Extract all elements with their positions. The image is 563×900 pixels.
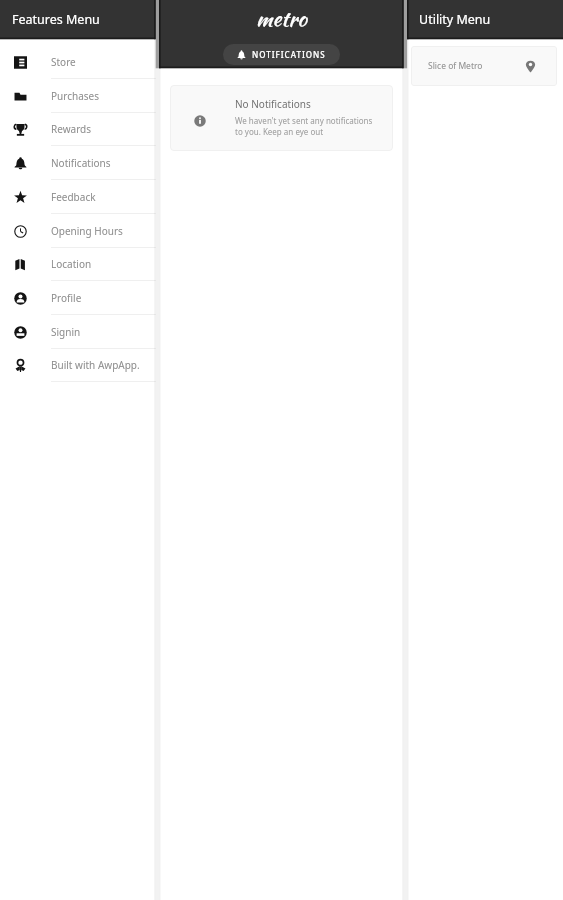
staticText: Features Menu [12,11,100,28]
button[interactable]: Opening Hours [0,214,157,248]
staticText: Built with AwpApp. [51,358,140,372]
staticText: No Notifications [235,97,311,111]
staticText: We haven't yet sent any notifications to… [235,115,373,138]
staticText: Purchases [51,89,99,103]
button[interactable]: Store [0,45,157,79]
staticText: Notifications [51,156,111,170]
staticText: Location [51,257,92,271]
staticText: Slice of Metro [428,60,483,72]
button[interactable]: Signin [0,315,157,349]
staticText: Rewards [51,122,91,136]
staticText: Feedback [51,190,96,204]
button[interactable]: NOTIFICATIONS [223,44,340,65]
button[interactable]: Built with AwpApp. [0,348,157,382]
button[interactable]: Location [0,247,157,281]
button[interactable]: Profile [0,281,157,315]
button[interactable]: No Notifications [170,85,393,151]
staticText: metro [256,3,307,34]
button[interactable]: Slice of Metro [411,46,557,86]
button[interactable]: Notifications [0,146,157,180]
staticText: Utility Menu [419,11,491,28]
button[interactable]: Feedback [0,180,157,214]
staticText: NOTIFICATIONS [252,49,326,60]
staticText: Signin [51,325,81,339]
staticText: Profile [51,291,82,305]
staticText: Store [51,55,76,69]
button[interactable]: Purchases [0,79,157,113]
button[interactable]: Rewards [0,112,157,146]
staticText: Opening Hours [51,224,123,238]
